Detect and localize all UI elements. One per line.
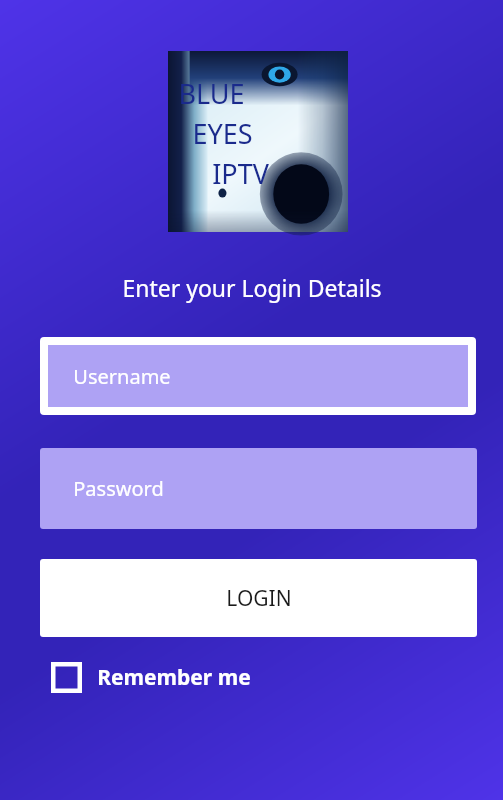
other: Remember me checkbox <box>50 661 82 693</box>
staticText: IPTV <box>212 155 269 192</box>
button[interactable]: LOGIN <box>40 559 477 637</box>
staticText: BLUE <box>178 75 245 112</box>
staticText: Enter your Login Details <box>122 272 382 303</box>
button[interactable]: Username <box>40 337 476 415</box>
button[interactable]: Remember me checkbox <box>50 658 251 696</box>
button[interactable]: Password <box>40 448 477 529</box>
staticText: LOGIN <box>226 584 292 613</box>
staticText: Remember me <box>97 663 251 692</box>
staticText: Username <box>73 363 171 390</box>
staticText: EYES <box>192 115 253 152</box>
staticText: Password <box>73 475 164 502</box>
